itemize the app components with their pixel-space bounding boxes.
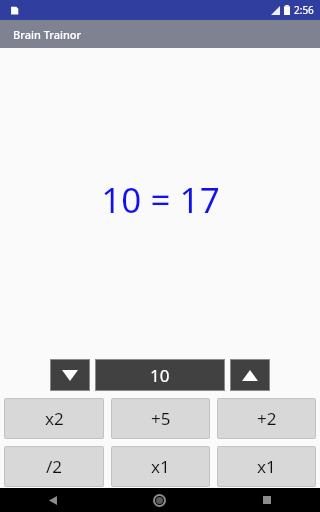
button[interactable]: Back [0,488,106,512]
button[interactable]: Recent apps [213,488,320,512]
button[interactable]: Increase [230,359,270,391]
button[interactable]: x1 [111,446,210,487]
staticText: +2 [257,407,277,430]
button[interactable]: +5 [111,398,210,439]
button[interactable]: 10 [95,359,225,391]
staticText: x1 [151,455,170,478]
button[interactable]: Home [106,488,213,512]
staticText: 2:56 [294,3,314,17]
button[interactable]: Decrease [50,359,90,391]
staticText: /2 [46,455,63,478]
button[interactable]: +2 [217,398,316,439]
staticText: 10 [150,364,170,387]
button[interactable]: /2 [4,446,104,487]
staticText: 10 = 17 [101,176,220,224]
button[interactable]: x2 [4,398,104,439]
button[interactable]: x1 [217,446,316,487]
staticText: x1 [257,455,276,478]
staticText: +5 [151,407,171,430]
staticText: Brain Trainor [13,27,82,42]
staticText: x2 [45,407,64,430]
